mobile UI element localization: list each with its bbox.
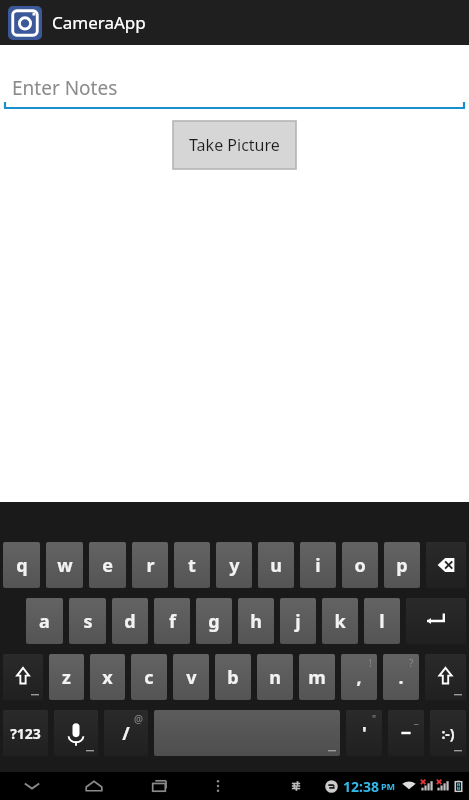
button[interactable]: Home	[79, 772, 109, 800]
button[interactable]: f	[154, 598, 190, 644]
staticText: n	[269, 665, 281, 690]
button[interactable]: z	[49, 654, 84, 700]
staticText: c	[144, 665, 154, 690]
button[interactable]: Enter Notes	[0, 65, 469, 110]
staticText: m	[308, 665, 326, 690]
button[interactable]: q	[3, 542, 40, 588]
button[interactable]: Voice input	[54, 710, 98, 756]
button[interactable]: b	[215, 654, 251, 700]
staticText: y	[229, 553, 240, 578]
button[interactable]: Shift	[425, 654, 466, 700]
staticText: u	[270, 553, 282, 578]
staticText: i	[315, 553, 321, 578]
button[interactable]: h	[238, 598, 274, 644]
staticText: p	[396, 553, 408, 578]
staticText: ?123	[10, 724, 41, 743]
button[interactable]: x	[90, 654, 125, 700]
staticText: @	[134, 712, 143, 726]
staticText: d	[124, 609, 136, 634]
button[interactable]: p	[384, 542, 420, 588]
button[interactable]: a	[26, 598, 63, 644]
staticText: o	[354, 553, 366, 578]
staticText: w	[57, 553, 73, 578]
button[interactable]: w	[46, 542, 83, 588]
staticText: q	[16, 553, 28, 578]
staticText: l	[379, 609, 385, 634]
button[interactable]: j	[280, 598, 316, 644]
staticText: k	[334, 609, 346, 634]
staticText: '	[362, 721, 367, 746]
other: App icon	[8, 6, 42, 40]
button[interactable]: o	[342, 542, 378, 588]
button[interactable]: Dash	[388, 710, 424, 756]
button[interactable]: y	[216, 542, 252, 588]
button[interactable]: g	[196, 598, 232, 644]
button[interactable]: c	[131, 654, 167, 700]
button[interactable]: u	[258, 542, 294, 588]
button[interactable]: '	[346, 710, 382, 756]
button[interactable]: l	[364, 598, 400, 644]
button[interactable]: :-)	[430, 710, 466, 756]
button[interactable]: /	[104, 710, 148, 756]
staticText: v	[186, 665, 197, 690]
staticText: b	[227, 665, 239, 690]
button[interactable]: s	[69, 598, 106, 644]
staticText: s	[83, 609, 93, 634]
button[interactable]: n	[257, 654, 293, 700]
staticText: _	[414, 712, 419, 726]
button[interactable]: Take Picture	[173, 121, 296, 169]
staticText: "	[372, 712, 377, 726]
staticText: ?	[409, 656, 414, 670]
staticText: :-)	[441, 724, 455, 743]
staticText: CameraApp	[52, 11, 146, 34]
button[interactable]: .	[383, 654, 419, 700]
staticText: 12:38	[343, 777, 379, 796]
staticText: PM	[381, 780, 396, 792]
button[interactable]: v	[173, 654, 209, 700]
staticText: e	[102, 553, 113, 578]
button[interactable]: Hide keyboard	[17, 772, 47, 800]
button[interactable]: Recent apps	[144, 772, 174, 800]
staticText: a	[39, 609, 50, 634]
staticText: g	[208, 609, 220, 634]
staticText: z	[62, 665, 71, 690]
button[interactable]: t	[174, 542, 210, 588]
staticText: /	[122, 721, 130, 746]
staticText: j	[295, 609, 301, 634]
staticText: ,	[356, 665, 362, 690]
staticText: !	[369, 656, 372, 670]
staticText: t	[188, 553, 196, 578]
staticText: x	[102, 665, 113, 690]
staticText: r	[146, 553, 155, 578]
button[interactable]: r	[132, 542, 168, 588]
button[interactable]: e	[89, 542, 126, 588]
button[interactable]: Menu	[204, 772, 232, 800]
staticText: .	[398, 665, 404, 690]
staticText: h	[250, 609, 262, 634]
button[interactable]: ?123	[3, 710, 48, 756]
button[interactable]: d	[112, 598, 148, 644]
button[interactable]: i	[300, 542, 336, 588]
button[interactable]: Space	[154, 710, 340, 756]
button[interactable]: k	[322, 598, 358, 644]
button[interactable]: Shift	[3, 654, 43, 700]
staticText: Take Picture	[189, 134, 280, 156]
staticText: f	[169, 609, 176, 634]
button[interactable]: Enter	[406, 598, 466, 644]
staticText: Enter Notes	[12, 75, 118, 101]
button[interactable]: ,	[341, 654, 377, 700]
button[interactable]: Backspace	[426, 542, 466, 588]
button[interactable]: m	[299, 654, 335, 700]
